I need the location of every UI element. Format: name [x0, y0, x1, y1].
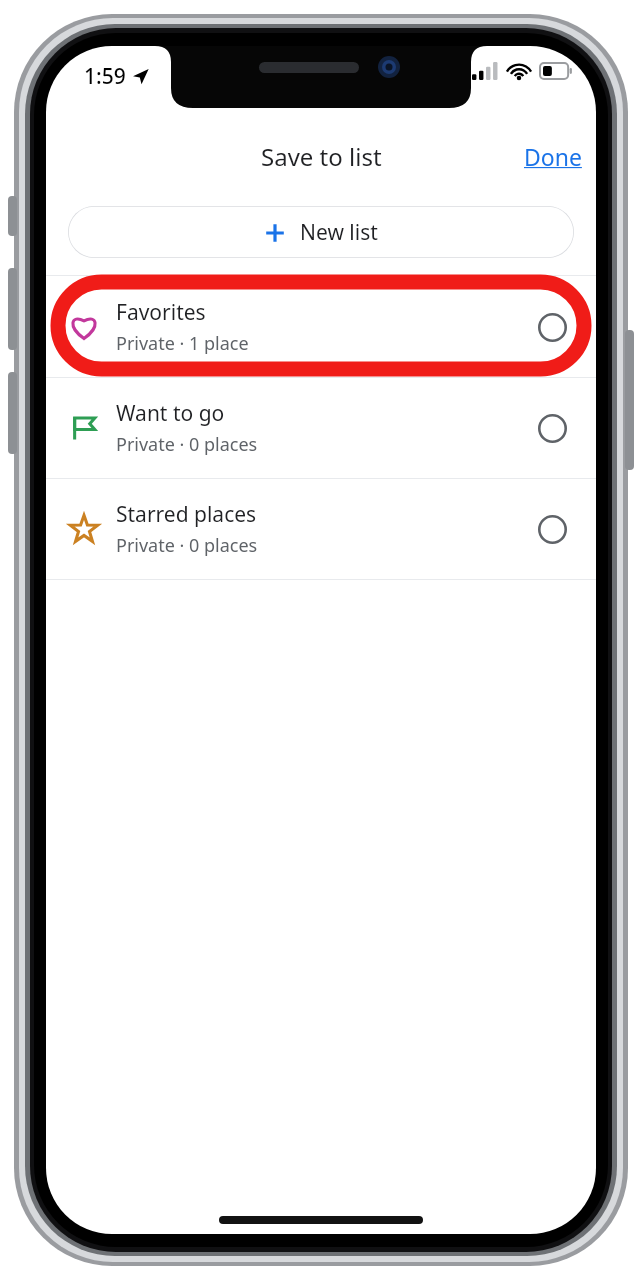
button[interactable]: Select Starred places [532, 509, 572, 549]
button[interactable]: Want to go [46, 378, 596, 478]
button[interactable]: Select Want to go [532, 408, 572, 448]
staticText: Done [524, 141, 582, 172]
staticText: Private · 0 places [116, 432, 258, 457]
button[interactable]: Starred places [46, 479, 596, 579]
staticText: Save to list [261, 140, 382, 173]
staticText: Favorites [116, 298, 206, 327]
staticText: Private · 0 places [116, 533, 258, 558]
staticText: 1:59 [84, 62, 126, 91]
staticText: Want to go [116, 399, 225, 428]
button[interactable]: Select Favorites [532, 307, 572, 347]
button[interactable]: Favorites [46, 276, 596, 377]
button[interactable]: Done [518, 137, 588, 176]
staticText: Private · 1 place [116, 331, 249, 356]
button[interactable]: New list [68, 206, 574, 258]
staticText: New list [300, 218, 378, 247]
staticText: Starred places [116, 500, 257, 529]
